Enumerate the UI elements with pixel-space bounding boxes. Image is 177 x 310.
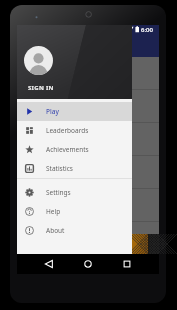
staticText: SIGN IN — [28, 84, 54, 92]
button[interactable]: Help — [17, 202, 132, 221]
button[interactable]: Statistics — [17, 159, 132, 178]
staticText: Settings — [46, 188, 71, 197]
button[interactable]: Play — [17, 102, 132, 121]
button[interactable]: Recent apps — [120, 257, 134, 271]
staticText: Statistics — [46, 164, 73, 173]
staticText: About — [46, 226, 65, 235]
button[interactable]: Home — [81, 257, 95, 271]
staticText: Achievements — [46, 145, 89, 154]
button[interactable]: Settings — [17, 183, 132, 202]
staticText: Play — [46, 107, 59, 116]
button[interactable]: Leaderboards — [17, 121, 132, 140]
button[interactable]: About — [17, 221, 132, 240]
staticText: Help — [46, 207, 61, 216]
button[interactable]: Achievements — [17, 140, 132, 159]
staticText: 6:00 — [141, 26, 153, 34]
button[interactable]: Back — [42, 257, 56, 271]
staticText: Leaderboards — [46, 126, 89, 135]
